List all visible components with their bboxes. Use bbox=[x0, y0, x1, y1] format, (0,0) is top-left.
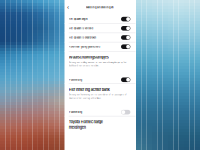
staticText: Herinnering achterbank bbox=[69, 87, 110, 92]
button[interactable]: Het opladen is onderbroken bbox=[64, 33, 135, 42]
button[interactable]: Pushmelding bbox=[64, 76, 135, 83]
staticText: Ontvang een herinnering om te controlere… bbox=[69, 94, 127, 99]
staticText: Abnormaal gedrag gedetecteerd bbox=[69, 45, 100, 48]
staticText: Pushmelding bbox=[69, 111, 82, 114]
staticText: Het opladen is voltooid bbox=[69, 27, 93, 30]
staticText: Ontvang een melding wanneer er een waars… bbox=[69, 61, 127, 67]
button[interactable]: Aan bbox=[121, 35, 130, 40]
button[interactable]: Aan bbox=[121, 77, 130, 82]
staticText: Meldingsinstellingen bbox=[86, 6, 114, 9]
button[interactable]: Aan bbox=[121, 17, 130, 21]
staticText: Pushmelding bbox=[69, 78, 82, 81]
button[interactable]: Het opladen begint bbox=[64, 15, 135, 23]
button[interactable]: Abnormaal gedrag gedetecteerd bbox=[64, 42, 135, 51]
staticText: Het opladen is onderbroken bbox=[69, 36, 96, 39]
button[interactable]: Uit bbox=[121, 110, 130, 114]
staticText: Waarschuwingslampjes bbox=[69, 55, 109, 59]
staticText: ‹ bbox=[67, 4, 69, 11]
button[interactable]: Aan bbox=[121, 44, 130, 49]
button[interactable]: Het opladen is voltooid bbox=[64, 24, 135, 33]
staticText: Het opladen begint bbox=[69, 18, 88, 20]
staticText: Toyota HomeCharge meldingen bbox=[69, 120, 103, 130]
button[interactable]: Terug bbox=[64, 4, 71, 11]
button[interactable]: Pushmelding bbox=[64, 108, 135, 116]
button[interactable]: Aan bbox=[121, 26, 130, 31]
